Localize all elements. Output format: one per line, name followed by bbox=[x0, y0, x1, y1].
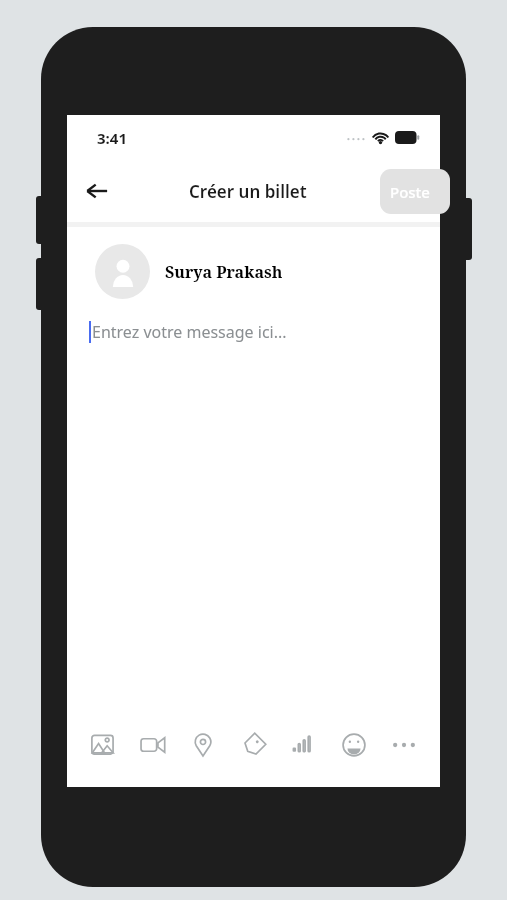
button[interactable]: Add poll bbox=[282, 725, 326, 765]
staticText: Créer un billet bbox=[189, 180, 307, 203]
button[interactable]: Back bbox=[75, 169, 119, 213]
button[interactable]: Add emoji bbox=[332, 725, 376, 765]
button[interactable]: Add photo bbox=[81, 725, 125, 765]
staticText: Entrez votre message ici... bbox=[92, 321, 287, 343]
button[interactable]: Poste bbox=[380, 169, 450, 214]
button[interactable]: Add location bbox=[181, 725, 225, 765]
button[interactable]: More options bbox=[382, 725, 426, 765]
button[interactable]: Add video bbox=[131, 725, 175, 765]
button[interactable]: Add tag bbox=[232, 725, 276, 765]
staticText: 3:41 bbox=[97, 128, 127, 148]
staticText: Poste bbox=[390, 182, 430, 202]
staticText: Surya Prakash bbox=[165, 261, 283, 283]
